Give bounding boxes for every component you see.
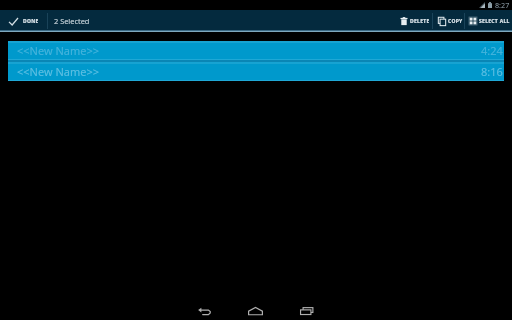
- staticText: <<New Name>>: [17, 43, 100, 58]
- staticText: SELECT ALL: [479, 18, 510, 25]
- button[interactable]: Recent apps: [281, 298, 333, 315]
- button[interactable]: <<New Name>>: [8, 62, 504, 81]
- button[interactable]: COPY: [433, 10, 464, 32]
- staticText: 8:16: [481, 64, 503, 79]
- staticText: DONE: [23, 18, 39, 25]
- button[interactable]: DONE: [0, 10, 47, 32]
- staticText: COPY: [448, 18, 463, 25]
- button[interactable]: Home: [229, 298, 281, 315]
- staticText: <<New Name>>: [17, 64, 100, 79]
- button[interactable]: SELECT ALL: [465, 10, 512, 32]
- staticText: 8:27: [495, 0, 510, 10]
- button[interactable]: DELETE: [395, 10, 432, 32]
- button[interactable]: <<New Name>>: [8, 41, 504, 60]
- staticText: DELETE: [410, 18, 430, 25]
- staticText: 4:24: [481, 43, 503, 58]
- button[interactable]: Back: [179, 298, 229, 315]
- staticText: 2 Selected: [54, 16, 90, 26]
